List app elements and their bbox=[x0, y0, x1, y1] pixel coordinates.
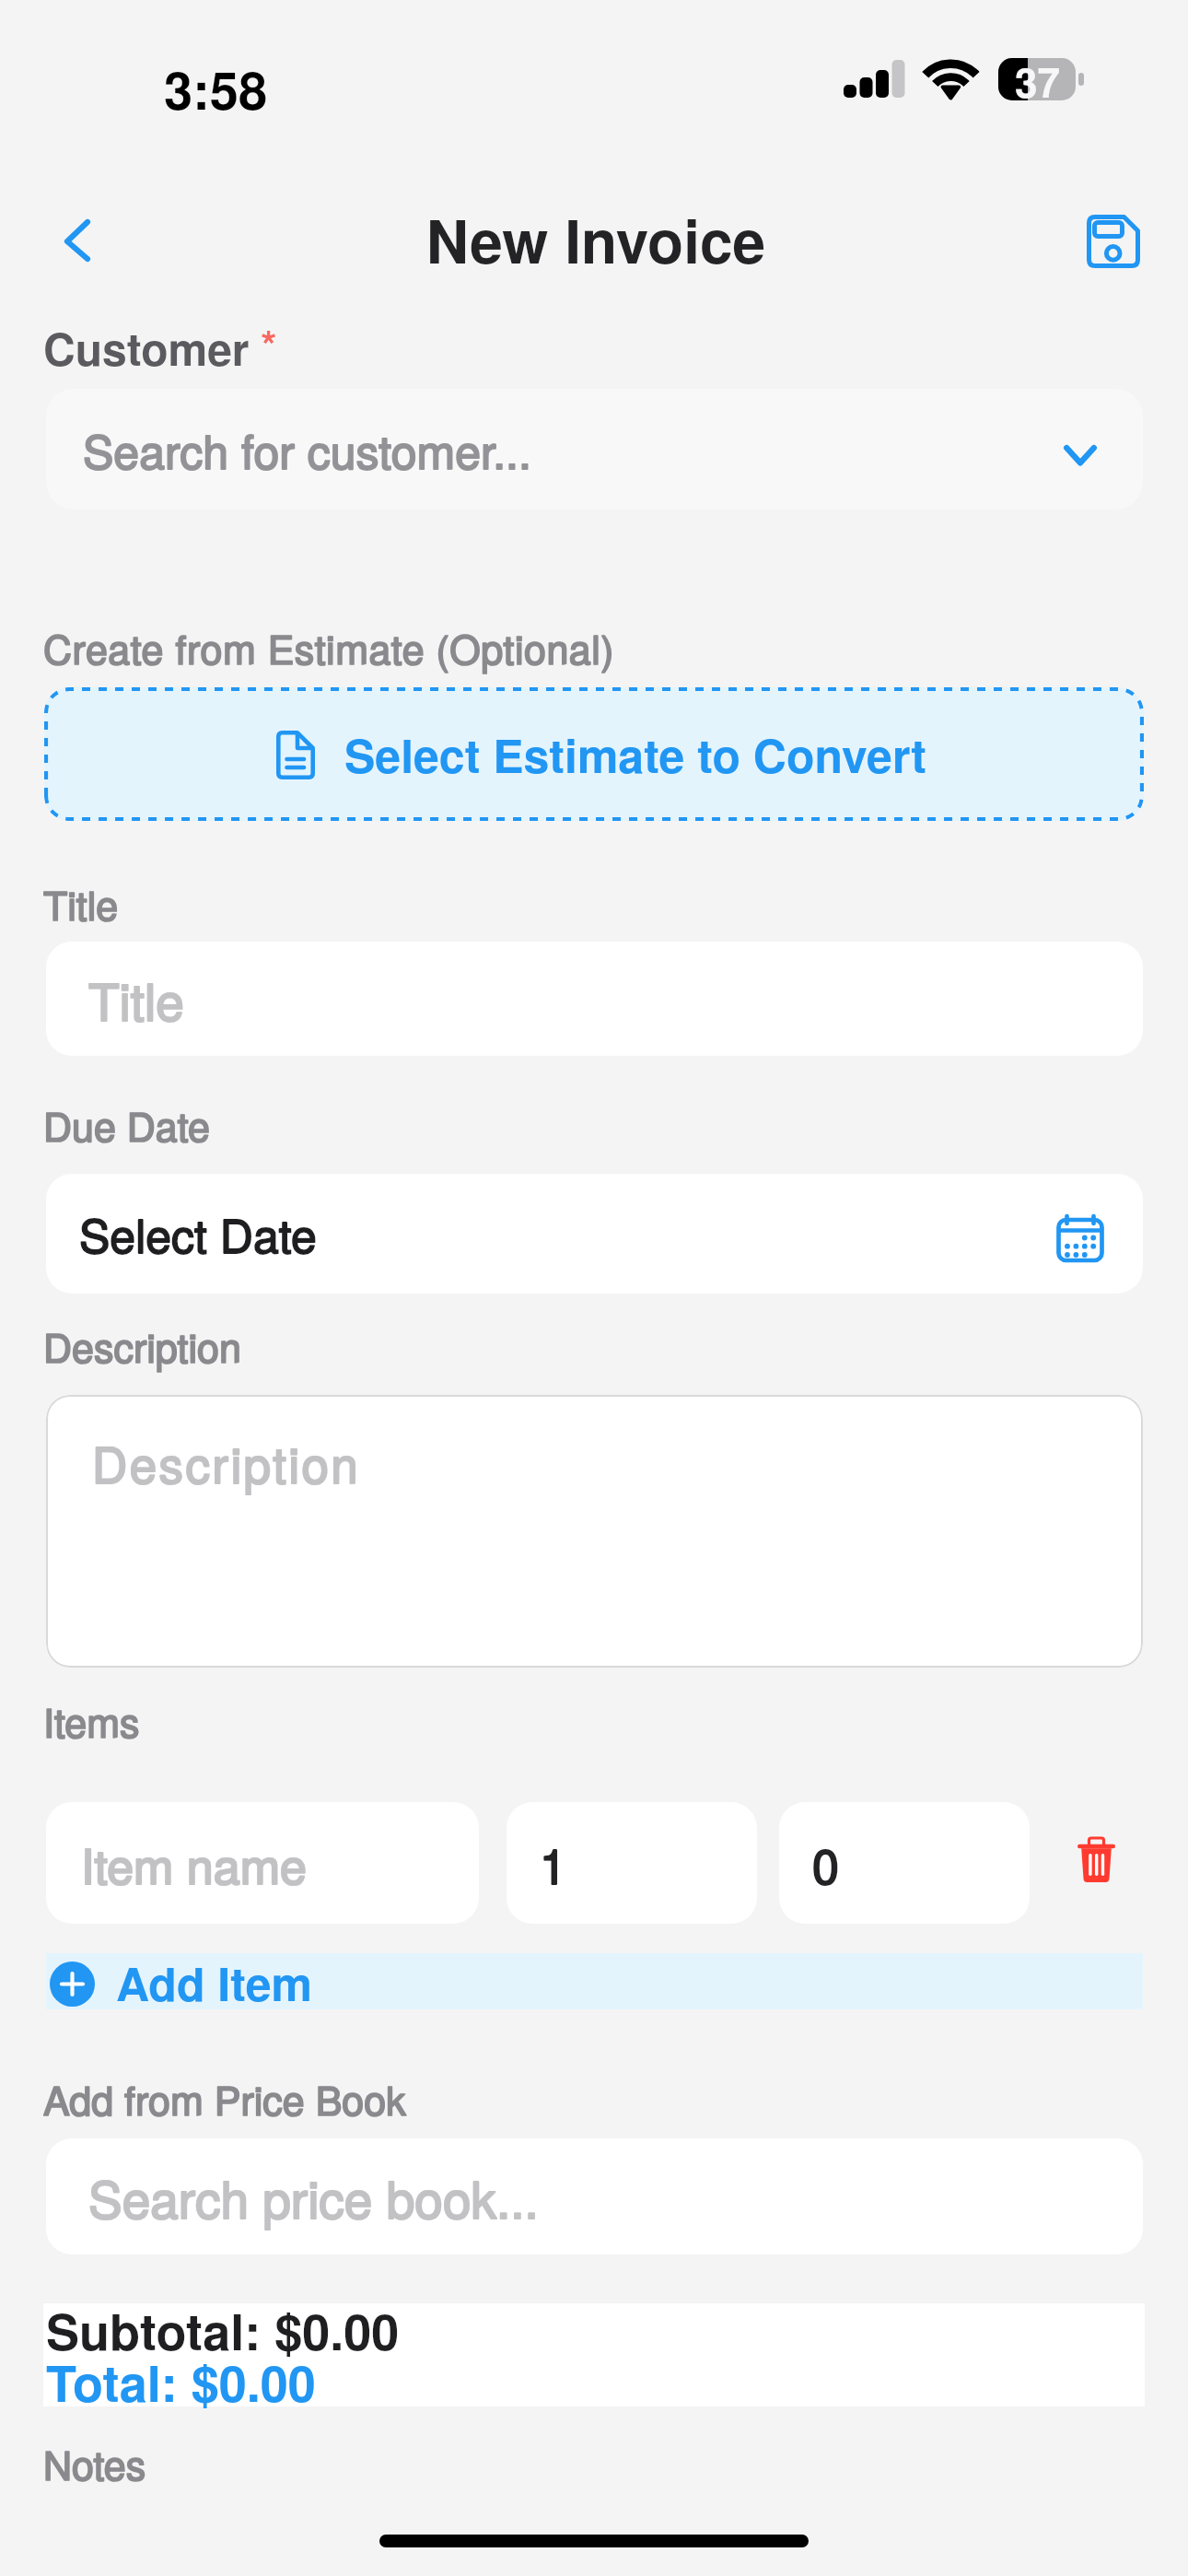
staticText: 1 bbox=[540, 1829, 566, 1897]
button[interactable]: Item name bbox=[46, 1802, 479, 1924]
button[interactable]: Description bbox=[46, 1395, 1143, 1668]
staticText: 3:58 bbox=[164, 52, 268, 125]
staticText: Select Estimate to Convert bbox=[344, 721, 926, 788]
staticText: Search for customer... bbox=[83, 416, 531, 483]
staticText: Description bbox=[43, 1317, 241, 1375]
staticText: 37 bbox=[1005, 52, 1070, 110]
staticText: Select Date bbox=[79, 1200, 317, 1267]
staticText: Search price book... bbox=[88, 2160, 539, 2233]
staticText: Due Date bbox=[43, 1096, 210, 1153]
button[interactable]: Search for customer... bbox=[46, 389, 1143, 509]
staticText: Add Item bbox=[116, 1950, 312, 2006]
staticText: Subtotal: $0.00 bbox=[46, 2294, 400, 2365]
button[interactable]: 0 bbox=[779, 1802, 1030, 1924]
staticText: Create from Estimate (Optional) bbox=[43, 619, 615, 676]
staticText: 0 bbox=[812, 1829, 839, 1897]
button[interactable]: Add Item bbox=[46, 1953, 1143, 2009]
staticText: Title bbox=[88, 963, 184, 1036]
button[interactable]: Title bbox=[46, 942, 1143, 1056]
staticText: Items bbox=[43, 1692, 140, 1750]
staticText: Items bbox=[43, 1692, 140, 1750]
staticText: Title bbox=[43, 875, 119, 932]
staticText: * bbox=[250, 314, 277, 372]
staticText: Search for customer... bbox=[83, 416, 531, 483]
button[interactable]: 1 bbox=[507, 1802, 757, 1924]
staticText: Total: $0.00 bbox=[46, 2346, 316, 2417]
staticText: Search price book... bbox=[88, 2160, 539, 2233]
staticText: Customer bbox=[43, 316, 250, 380]
staticText: Notes bbox=[43, 2435, 146, 2492]
staticText: Title bbox=[88, 963, 184, 1036]
button[interactable]: Back bbox=[37, 199, 118, 280]
staticText: Due Date bbox=[43, 1096, 210, 1153]
staticText: Select Date bbox=[79, 1200, 317, 1267]
button[interactable]: Save bbox=[1087, 215, 1140, 268]
staticText: New Invoice bbox=[2, 197, 1188, 282]
staticText: Item name bbox=[81, 1829, 307, 1897]
staticText: Title bbox=[43, 875, 119, 932]
staticText: Description bbox=[92, 1427, 361, 1497]
staticText: 0 bbox=[812, 1829, 839, 1897]
staticText: Description bbox=[43, 1317, 241, 1375]
staticText: Notes bbox=[43, 2435, 146, 2492]
button[interactable]: Select Date bbox=[46, 1174, 1143, 1294]
staticText: Add from Price Book bbox=[43, 2070, 406, 2127]
button[interactable]: Search price book... bbox=[46, 2138, 1143, 2254]
staticText: Item name bbox=[81, 1829, 307, 1897]
button[interactable]: Delete item bbox=[1057, 1811, 1136, 1914]
staticText: 1 bbox=[540, 1829, 566, 1897]
staticText: Add from Price Book bbox=[43, 2070, 406, 2127]
staticText: Description bbox=[92, 1427, 361, 1497]
staticText: Create from Estimate (Optional) bbox=[43, 619, 615, 676]
button[interactable]: Select Estimate to Convert bbox=[44, 687, 1144, 821]
